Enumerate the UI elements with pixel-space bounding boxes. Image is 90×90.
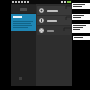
button[interactable]: Additional setting note bbox=[72, 3, 90, 9]
button[interactable] bbox=[11, 5, 36, 13]
button[interactable]: Voice bbox=[37, 6, 71, 15]
button[interactable]: Footer note bbox=[73, 36, 90, 40]
other: Input bbox=[39, 18, 44, 23]
other: Voice bbox=[39, 8, 44, 13]
button[interactable]: Input bbox=[37, 16, 71, 25]
other: All bbox=[39, 28, 44, 33]
button[interactable]: All bbox=[37, 26, 71, 35]
button[interactable]: Storage access note bbox=[72, 24, 90, 33]
button[interactable] bbox=[11, 14, 36, 31]
button[interactable]: Input permission note bbox=[72, 14, 90, 20]
